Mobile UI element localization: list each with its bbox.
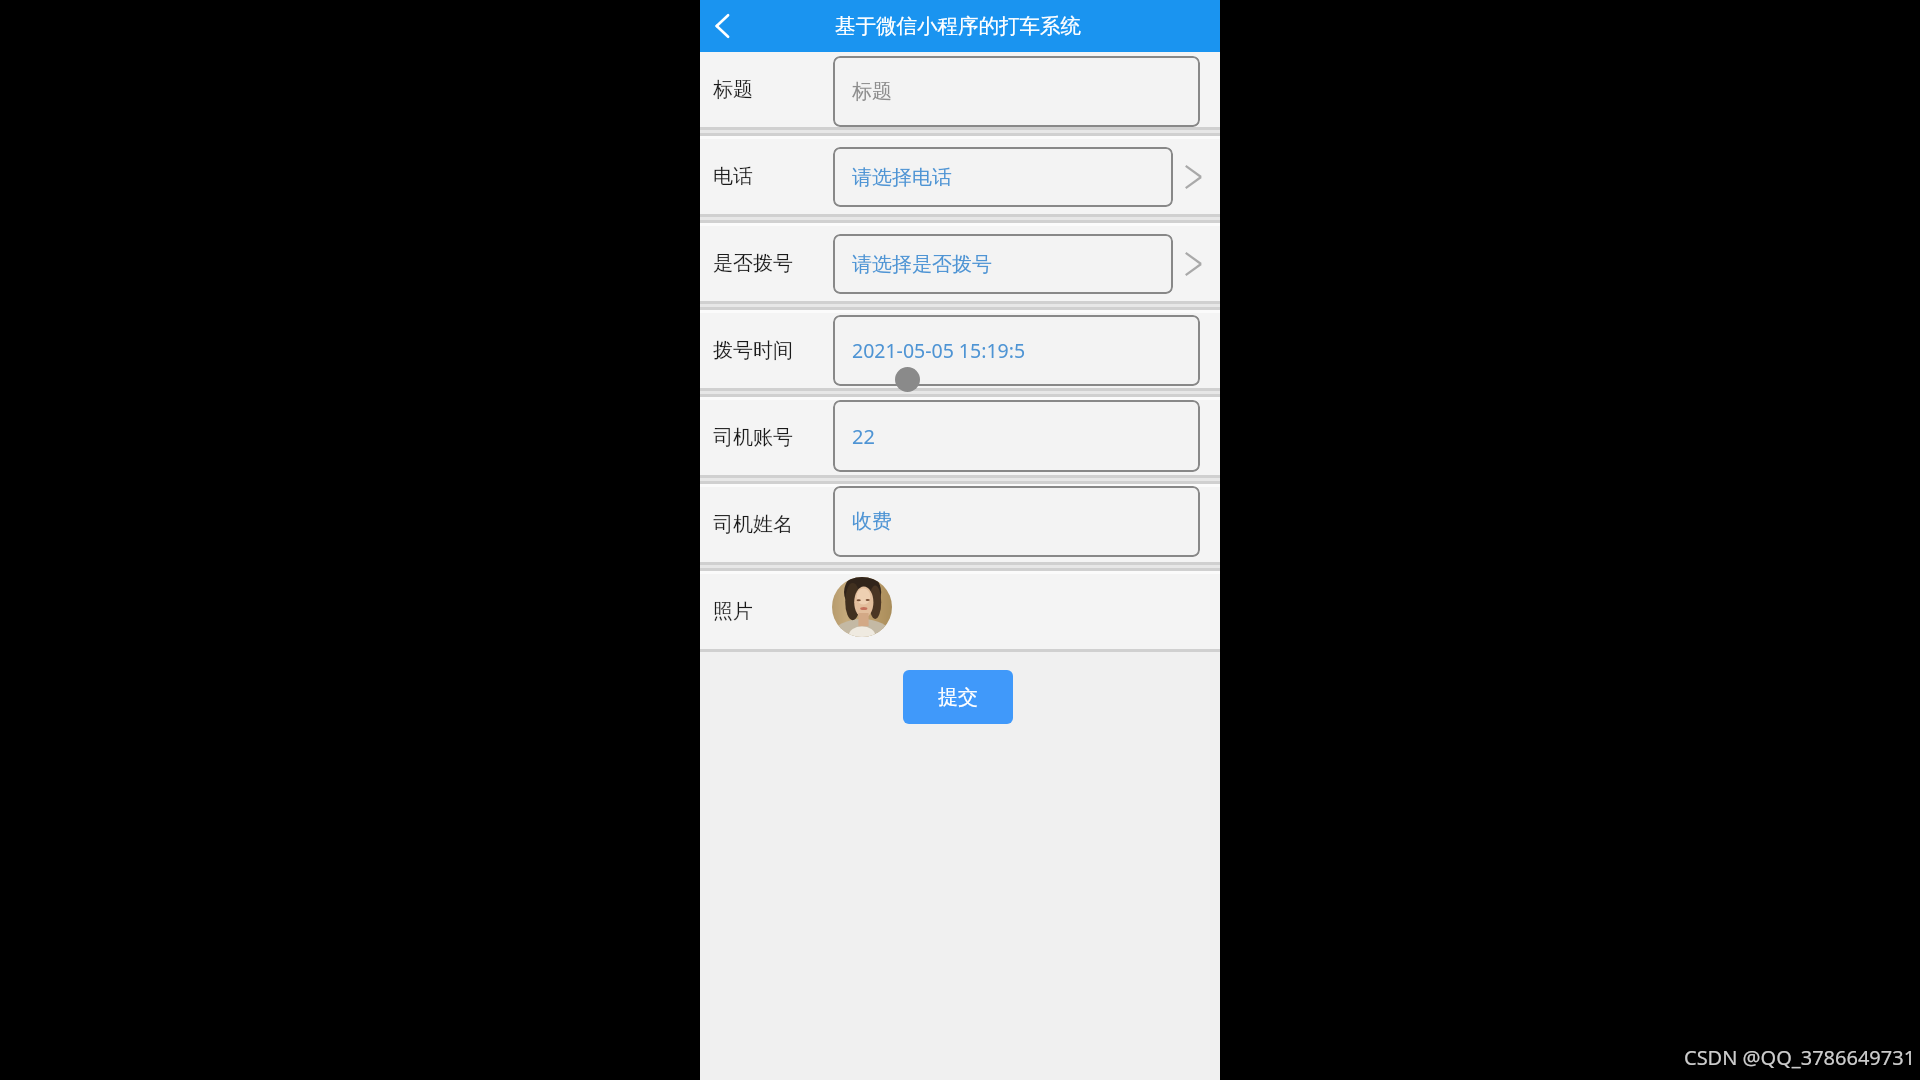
button[interactable]: Open	[1174, 160, 1208, 194]
button[interactable]: 司机账号	[700, 400, 1220, 475]
staticText: 收费	[852, 509, 892, 534]
button[interactable]: Photo	[832, 577, 892, 637]
button[interactable]: 电话	[700, 139, 1220, 214]
staticText: 22	[852, 423, 875, 450]
staticText: 基于微信小程序的打车系统	[835, 13, 1081, 39]
button[interactable]: 标题	[700, 52, 1220, 127]
staticText: 司机账号	[713, 425, 793, 450]
staticText: 请选择是否拨号	[852, 252, 992, 277]
staticText: 电话	[713, 164, 753, 189]
button[interactable]: Pick time	[895, 367, 920, 392]
staticText: 拨号时间	[713, 338, 793, 363]
staticText: 是否拨号	[713, 251, 793, 276]
staticText: 司机姓名	[713, 512, 793, 537]
staticText: 请选择电话	[852, 165, 952, 190]
staticText: 2021-05-05 15:19:5	[852, 337, 1026, 364]
button[interactable]: 照片	[700, 574, 1220, 649]
button[interactable]: 拨号时间	[700, 313, 1220, 388]
button[interactable]: Back	[700, 0, 752, 52]
button[interactable]: 提交	[903, 670, 1013, 724]
staticText: 照片	[713, 599, 753, 624]
staticText: CSDN @QQ_3786649731	[1684, 1044, 1916, 1071]
button[interactable]: 是否拨号	[700, 226, 1220, 301]
button[interactable]: 司机姓名	[700, 487, 1220, 562]
button[interactable]: Open	[1174, 247, 1208, 281]
staticText: 标题	[852, 79, 892, 104]
staticText: 提交	[938, 685, 978, 710]
staticText: 标题	[713, 77, 753, 102]
